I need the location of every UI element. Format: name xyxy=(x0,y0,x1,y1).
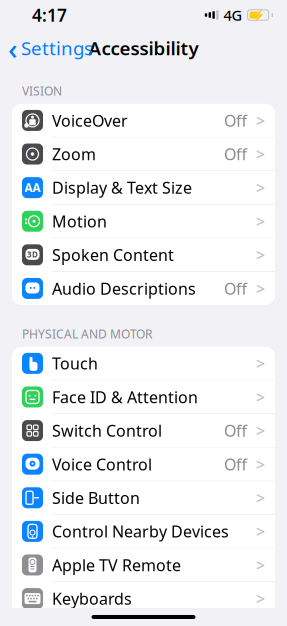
staticText: 4G xyxy=(224,5,243,25)
button[interactable]: Audio Descriptions xyxy=(12,272,275,305)
staticText: 4:17 xyxy=(32,3,67,26)
staticText: AA xyxy=(24,180,40,196)
button[interactable]: Voice Control xyxy=(12,448,275,481)
staticText: Face ID & Attention xyxy=(52,386,198,407)
staticText: > xyxy=(256,386,265,407)
button[interactable]: Face ID & Attention xyxy=(12,380,275,414)
button[interactable]: Zoom xyxy=(12,137,275,171)
staticText: Voice Control xyxy=(52,453,152,475)
staticText: Apple TV Remote xyxy=(52,554,181,575)
staticText: Settings xyxy=(21,36,93,60)
staticText: VISION xyxy=(22,83,62,99)
staticText: Spoken Content xyxy=(52,244,174,265)
staticText: ⚡ xyxy=(252,9,265,21)
staticText: > xyxy=(256,554,265,575)
staticText: Display & Text Size xyxy=(52,177,192,198)
button[interactable]: Switch Control xyxy=(12,414,275,448)
staticText: Control Nearby Devices xyxy=(52,521,229,542)
button[interactable]: Motion xyxy=(12,205,275,238)
staticText: > xyxy=(256,177,265,198)
staticText: > xyxy=(256,588,265,609)
button[interactable]: Apple TV Remote xyxy=(12,548,275,582)
staticText: > xyxy=(256,453,265,475)
staticText: > xyxy=(256,110,265,131)
staticText: > xyxy=(256,521,265,542)
button[interactable]: Keyboards xyxy=(12,582,275,615)
staticText: > xyxy=(256,278,265,299)
staticText: > xyxy=(256,487,265,508)
staticText: > xyxy=(256,420,265,441)
button[interactable]: Control Nearby Devices xyxy=(12,515,275,548)
staticText: > xyxy=(256,211,265,232)
staticText: Zoom xyxy=(52,143,96,165)
staticText: Off xyxy=(224,278,247,299)
staticText: PHYSICAL AND MOTOR xyxy=(22,326,152,342)
button[interactable]: AA xyxy=(12,171,275,205)
button[interactable]: Side Button xyxy=(12,481,275,515)
staticText: 3D xyxy=(27,249,38,260)
staticText: Accessibility xyxy=(88,36,198,60)
staticText: Side Button xyxy=(52,487,140,508)
staticText: Keyboards xyxy=(52,588,132,609)
staticText: Motion xyxy=(52,211,107,232)
staticText: Audio Descriptions xyxy=(52,278,196,299)
staticText: > xyxy=(256,244,265,265)
button[interactable]: ‹ xyxy=(0,31,101,65)
staticText: > xyxy=(256,353,265,374)
staticText: Off xyxy=(224,453,247,475)
staticText: VoiceOver xyxy=(52,110,128,131)
staticText: > xyxy=(256,143,265,165)
staticText: Touch xyxy=(52,353,98,374)
button[interactable]: Touch xyxy=(12,347,275,380)
staticText: ‹ xyxy=(8,28,18,67)
staticText: Off xyxy=(224,143,247,165)
button[interactable]: 3D xyxy=(12,238,275,272)
staticText: Switch Control xyxy=(52,420,162,441)
staticText: Off xyxy=(224,420,247,441)
staticText: Off xyxy=(224,110,247,131)
button[interactable]: VoiceOver xyxy=(12,104,275,137)
